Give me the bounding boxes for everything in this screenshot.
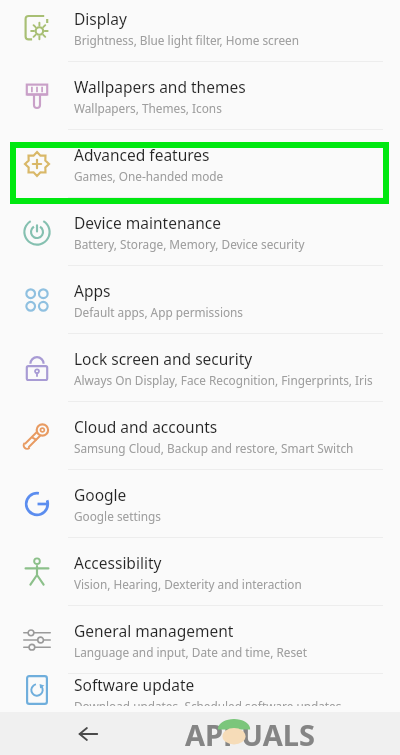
staticText: Software update [74,674,195,695]
staticText: Brightness, Blue light filter, Home scre… [74,32,299,48]
button[interactable]: Wallpapers and themes [0,62,400,130]
staticText: Default apps, App permissions [74,304,244,320]
button[interactable]: Advanced features [0,130,400,198]
button[interactable]: Back [68,714,108,754]
staticText: Always On Display, Face Recognition, Fin… [74,372,373,388]
staticText: Wallpapers, Themes, Icons [74,100,222,116]
staticText: Device maintenance [74,212,221,233]
button[interactable]: Display [0,0,400,62]
button[interactable]: Lock screen and security [0,334,400,402]
staticText: Cloud and accounts [74,416,218,437]
staticText: APPUALS [185,715,315,754]
staticText: Accessibility [74,552,162,573]
button[interactable]: Apps [0,266,400,334]
button[interactable]: Software update [0,674,400,706]
button[interactable]: Device maintenance [0,198,400,266]
staticText: Samsung Cloud, Backup and restore, Smart… [74,440,354,456]
button[interactable]: Cloud and accounts [0,402,400,470]
staticText: Battery, Storage, Memory, Device securit… [74,236,305,252]
staticText: Display [74,8,127,29]
staticText: Apps [74,280,111,301]
staticText: Lock screen and security [74,348,253,369]
button[interactable]: General management [0,606,400,674]
staticText: Google settings [74,508,161,524]
staticText: Google [74,484,127,505]
staticText: Download updates, Scheduled software upd… [74,698,342,706]
staticText: Language and input, Date and time, Reset [74,644,308,660]
staticText: Vision, Hearing, Dexterity and interacti… [74,576,302,592]
staticText: Advanced features [74,144,210,165]
staticText: General management [74,620,234,641]
button[interactable]: Google [0,470,400,538]
staticText: Games, One-handed mode [74,168,224,184]
button[interactable]: Accessibility [0,538,400,606]
staticText: Wallpapers and themes [74,76,246,97]
